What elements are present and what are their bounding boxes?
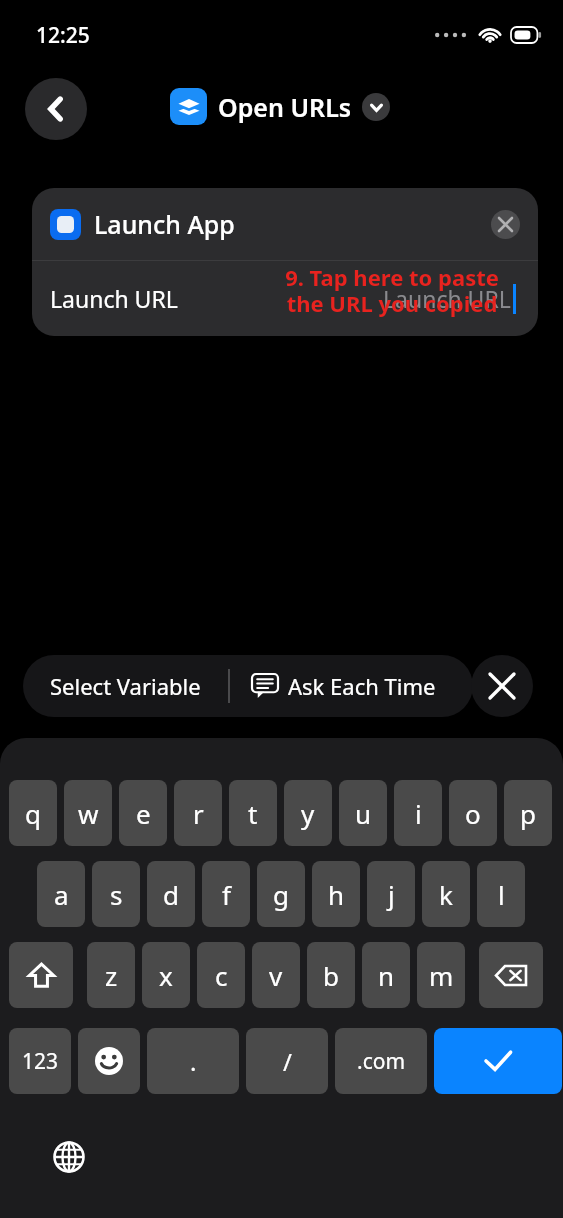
button[interactable]: z bbox=[87, 942, 135, 1008]
button[interactable]: g bbox=[257, 861, 305, 927]
button[interactable]: .com bbox=[335, 1028, 427, 1094]
staticText: Launch App bbox=[94, 207, 235, 241]
button[interactable]: s bbox=[92, 861, 140, 927]
button[interactable]: 123 bbox=[9, 1028, 71, 1094]
button[interactable]: v bbox=[252, 942, 300, 1008]
staticText: z bbox=[105, 958, 118, 993]
staticText: e bbox=[136, 796, 151, 831]
button[interactable]: d bbox=[147, 861, 195, 927]
button[interactable]: Backspace bbox=[479, 942, 543, 1008]
button[interactable]: Close bbox=[471, 655, 533, 717]
button[interactable]: u bbox=[339, 780, 387, 846]
button[interactable]: x bbox=[142, 942, 190, 1008]
staticText: 123 bbox=[22, 1047, 59, 1076]
button[interactable]: e bbox=[119, 780, 167, 846]
staticText: h bbox=[328, 877, 345, 912]
staticText: Select Variable bbox=[50, 671, 201, 701]
staticText: q bbox=[25, 796, 41, 831]
button[interactable]: Switch keyboard language bbox=[40, 1128, 98, 1186]
button[interactable]: Launch App bbox=[32, 188, 538, 260]
button[interactable]: c bbox=[197, 942, 245, 1008]
staticText: d bbox=[163, 877, 179, 912]
button[interactable]: q bbox=[9, 780, 57, 846]
staticText: b bbox=[323, 958, 339, 993]
staticText: Open URLs bbox=[218, 90, 352, 124]
button[interactable]: y bbox=[284, 780, 332, 846]
button[interactable]: w bbox=[64, 780, 112, 846]
staticText: f bbox=[222, 877, 231, 912]
button[interactable]: Back bbox=[25, 78, 87, 140]
button[interactable]: m bbox=[417, 942, 465, 1008]
button[interactable]: Shift bbox=[9, 942, 73, 1008]
button[interactable]: j bbox=[367, 861, 415, 927]
button[interactable]: . bbox=[147, 1028, 239, 1094]
staticText: t bbox=[248, 796, 258, 831]
button[interactable]: n bbox=[362, 942, 410, 1008]
button[interactable]: i bbox=[394, 780, 442, 846]
staticText: o bbox=[465, 796, 481, 831]
staticText: 12:25 bbox=[36, 21, 90, 50]
button[interactable]: a bbox=[37, 861, 85, 927]
staticText: g bbox=[273, 877, 289, 912]
button[interactable]: Remove action bbox=[491, 210, 520, 239]
button[interactable]: More options bbox=[362, 93, 390, 121]
staticText: .com bbox=[357, 1047, 406, 1076]
button[interactable]: f bbox=[202, 861, 250, 927]
button[interactable]: o bbox=[449, 780, 497, 846]
button[interactable]: h bbox=[312, 861, 360, 927]
button[interactable]: l bbox=[477, 861, 525, 927]
staticText: c bbox=[215, 958, 228, 993]
staticText: . bbox=[190, 1045, 197, 1078]
staticText: x bbox=[159, 958, 173, 993]
button[interactable]: Open URLs bbox=[170, 88, 390, 125]
button[interactable]: p bbox=[504, 780, 552, 846]
staticText: r bbox=[193, 796, 204, 831]
staticText: a bbox=[54, 877, 69, 912]
staticText: y bbox=[301, 796, 315, 831]
staticText: Launch URL bbox=[50, 283, 178, 314]
button[interactable]: r bbox=[174, 780, 222, 846]
button[interactable]: Emoji bbox=[78, 1028, 140, 1094]
staticText: s bbox=[110, 877, 123, 912]
staticText: l bbox=[498, 877, 505, 912]
button[interactable]: b bbox=[307, 942, 355, 1008]
staticText: v bbox=[269, 958, 283, 993]
staticText: j bbox=[388, 877, 395, 912]
staticText: 9. Tap here to paste the URL you copied bbox=[285, 262, 499, 319]
staticText: k bbox=[439, 877, 453, 912]
button[interactable]: Ask Each Time bbox=[230, 655, 473, 717]
staticText: u bbox=[355, 796, 372, 831]
staticText: m bbox=[429, 958, 454, 993]
staticText: Ask Each Time bbox=[288, 671, 436, 701]
staticText: / bbox=[283, 1045, 292, 1078]
button[interactable]: / bbox=[246, 1028, 328, 1094]
button[interactable]: k bbox=[422, 861, 470, 927]
staticText: n bbox=[378, 958, 395, 993]
staticText: p bbox=[520, 796, 536, 831]
button[interactable]: Launch URL bbox=[32, 261, 538, 336]
staticText: Launch URL bbox=[383, 283, 511, 314]
button[interactable]: Select Variable bbox=[23, 655, 228, 717]
button[interactable]: t bbox=[229, 780, 277, 846]
staticText: i bbox=[415, 796, 422, 831]
button[interactable]: Done bbox=[434, 1028, 562, 1094]
staticText: w bbox=[78, 796, 99, 831]
